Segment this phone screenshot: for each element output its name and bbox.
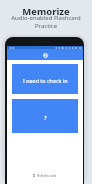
- staticText: Hide this card: [37, 174, 56, 178]
- staticText: I need to check in: [23, 77, 68, 84]
- button[interactable]: Hide this card: [33, 173, 56, 178]
- button[interactable]: ?: [12, 99, 78, 133]
- staticText: ?: [44, 114, 47, 122]
- staticText: Memorize: [22, 5, 70, 18]
- staticText: Audio-enabled Flashcard Practice: [8, 14, 84, 30]
- button[interactable]: Language: [7, 49, 83, 60]
- button[interactable]: I need to check in: [12, 64, 78, 94]
